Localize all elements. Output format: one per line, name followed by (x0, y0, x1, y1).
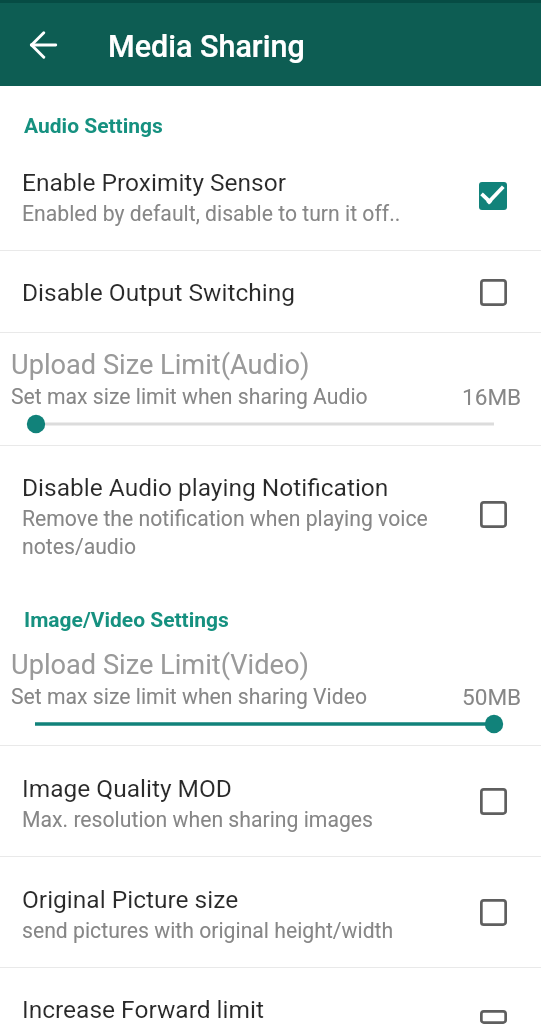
staticText: Image Quality MOD (22, 774, 232, 803)
button[interactable]: Image Quality MOD (0, 746, 541, 856)
button[interactable]: Upload Size Limit(Video) (0, 633, 541, 745)
staticText: Disable Output Switching (22, 278, 296, 307)
staticText: Increase Forward limit (22, 995, 264, 1024)
button[interactable]: Enable Proximity Sensor (0, 139, 541, 250)
staticText: Enable Proximity Sensor (22, 168, 287, 197)
button[interactable]: Increase Forward limit (0, 968, 541, 1024)
staticText: Media Sharing (108, 29, 305, 65)
staticText: Image/Video Settings (24, 608, 229, 633)
staticText: Set max size limit when sharing Video (11, 684, 368, 709)
staticText: send pictures with original height/width (22, 918, 394, 943)
staticText: Remove the notification when playing voi… (22, 506, 434, 559)
button[interactable]: Disable Output Switching (0, 251, 541, 332)
staticText: Original Picture size (22, 885, 239, 914)
staticText: 16MB (462, 384, 522, 410)
staticText: Upload Size Limit(Audio) (11, 349, 310, 381)
staticText: Max. resolution when sharing images (22, 807, 373, 832)
button[interactable]: Disable Audio playing Notification (0, 446, 541, 608)
button[interactable]: Original Picture size (0, 857, 541, 967)
staticText: Disable Audio playing Notification (22, 473, 389, 502)
staticText: Audio Settings (24, 114, 163, 139)
staticText: Upload Size Limit(Video) (11, 649, 309, 681)
staticText: 50MB (462, 684, 522, 710)
staticText: Enabled by default, disable to turn it o… (22, 201, 401, 226)
staticText: Set max size limit when sharing Audio (11, 384, 368, 409)
button[interactable]: Upload Size Limit(Audio) (0, 333, 541, 445)
button[interactable]: Back (15, 17, 71, 73)
